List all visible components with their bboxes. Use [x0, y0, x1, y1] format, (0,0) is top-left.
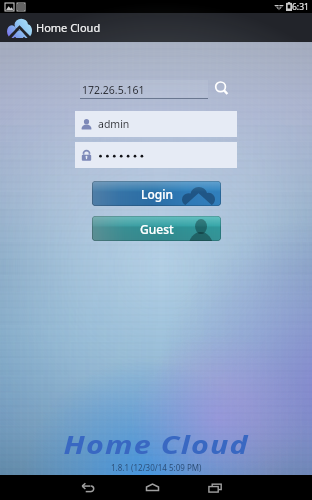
button[interactable] [75, 142, 237, 168]
button[interactable]: Guest [92, 216, 221, 241]
staticText: 1.8.1 (12/30/14 5:09 PM) [111, 462, 202, 473]
staticText: Home Cloud [36, 20, 101, 35]
staticText: admin [98, 117, 130, 131]
button[interactable]: Search [213, 80, 231, 98]
button[interactable]: admin [75, 111, 237, 137]
staticText: Guest [140, 221, 174, 237]
button[interactable]: Login [92, 181, 221, 206]
button[interactable]: Recent apps [198, 475, 232, 500]
staticText: 6:31 [292, 1, 309, 13]
staticText: Home Cloud [63, 428, 249, 461]
button[interactable]: 172.26.5.161 [80, 80, 208, 99]
staticText: Login [141, 186, 173, 202]
button[interactable]: Home Cloud [7, 18, 32, 38]
button[interactable]: Back [70, 475, 104, 500]
staticText: 172.26.5.161 [82, 83, 145, 97]
button[interactable]: Home [135, 475, 169, 500]
